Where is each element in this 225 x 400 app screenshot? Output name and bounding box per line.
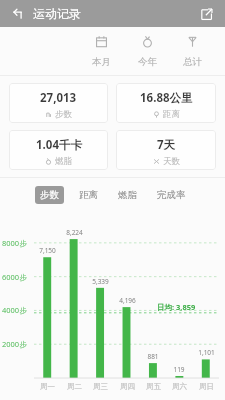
button[interactable]: 27,013 (9, 83, 108, 123)
button[interactable]: 7天 (116, 130, 216, 170)
button[interactable]: 距离 (74, 186, 103, 204)
staticText: 燃脂 (118, 189, 137, 201)
staticText: 周五 (146, 382, 161, 391)
staticText: 完成率 (157, 189, 186, 201)
button[interactable]: Back (8, 4, 28, 24)
staticText: 日均: 3,859 (157, 302, 196, 312)
staticText: 7,150 (39, 246, 56, 255)
staticText: 距离 (163, 109, 180, 120)
staticText: 周一 (40, 382, 55, 391)
button[interactable]: 16.88公里 (116, 83, 216, 123)
staticText: 881 (147, 352, 159, 361)
staticText: 4000步 (2, 305, 27, 315)
staticText: 8000步 (2, 238, 27, 248)
staticText: 5,339 (92, 277, 109, 286)
staticText: 运动记录 (33, 6, 81, 21)
staticText: 周二 (67, 382, 82, 391)
staticText: 今年 (138, 56, 157, 68)
staticText: 4,196 (119, 296, 136, 305)
staticText: 7天 (157, 137, 176, 153)
staticText: 燃脂 (55, 156, 72, 167)
staticText: 天数 (163, 156, 180, 167)
staticText: 步数 (40, 189, 59, 201)
staticText: 119 (173, 365, 185, 374)
staticText: 周日 (199, 382, 214, 391)
button[interactable]: 1.04千卡 (9, 130, 108, 170)
staticText: 距离 (79, 189, 98, 201)
staticText: 总计 (183, 56, 202, 68)
button[interactable]: 本月 (79, 27, 123, 75)
button[interactable]: 步数 (35, 186, 64, 204)
staticText: 2000步 (2, 339, 27, 349)
staticText: 本月 (92, 56, 111, 68)
staticText: 27,013 (40, 90, 77, 106)
staticText: 步数 (55, 109, 72, 120)
staticText: 1,101 (198, 348, 215, 357)
staticText: 1.04千卡 (36, 137, 82, 153)
staticText: 周六 (172, 382, 187, 391)
button[interactable]: 今年 (125, 27, 169, 75)
button[interactable]: 总计 (170, 27, 214, 75)
staticText: 周三 (93, 382, 108, 391)
button[interactable]: 燃脂 (113, 186, 142, 204)
staticText: 8,224 (66, 228, 83, 237)
button[interactable]: 完成率 (152, 186, 191, 204)
staticText: 16.88公里 (140, 90, 193, 106)
staticText: 6000步 (2, 272, 27, 282)
button[interactable]: Share (195, 3, 217, 25)
staticText: 周四 (120, 382, 135, 391)
